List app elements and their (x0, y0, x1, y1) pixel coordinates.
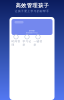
staticText: 学习记录 (22, 40, 31, 46)
button[interactable]: 时间管理 (10, 36, 21, 45)
button[interactable]: 学习记录 (21, 36, 32, 45)
button[interactable]: 一键登录 (32, 36, 43, 45)
staticText: 每日学习报告 (28, 30, 34, 31)
staticText: 一键登录 (33, 40, 42, 46)
staticText: 随时随地掌握孩子学习动态 (25, 32, 37, 33)
staticText: 高效管理孩子 (15, 2, 48, 9)
staticText: 时间管理 (11, 40, 20, 46)
staticText: 让孩子爱上学习的好帮手 (15, 9, 49, 13)
